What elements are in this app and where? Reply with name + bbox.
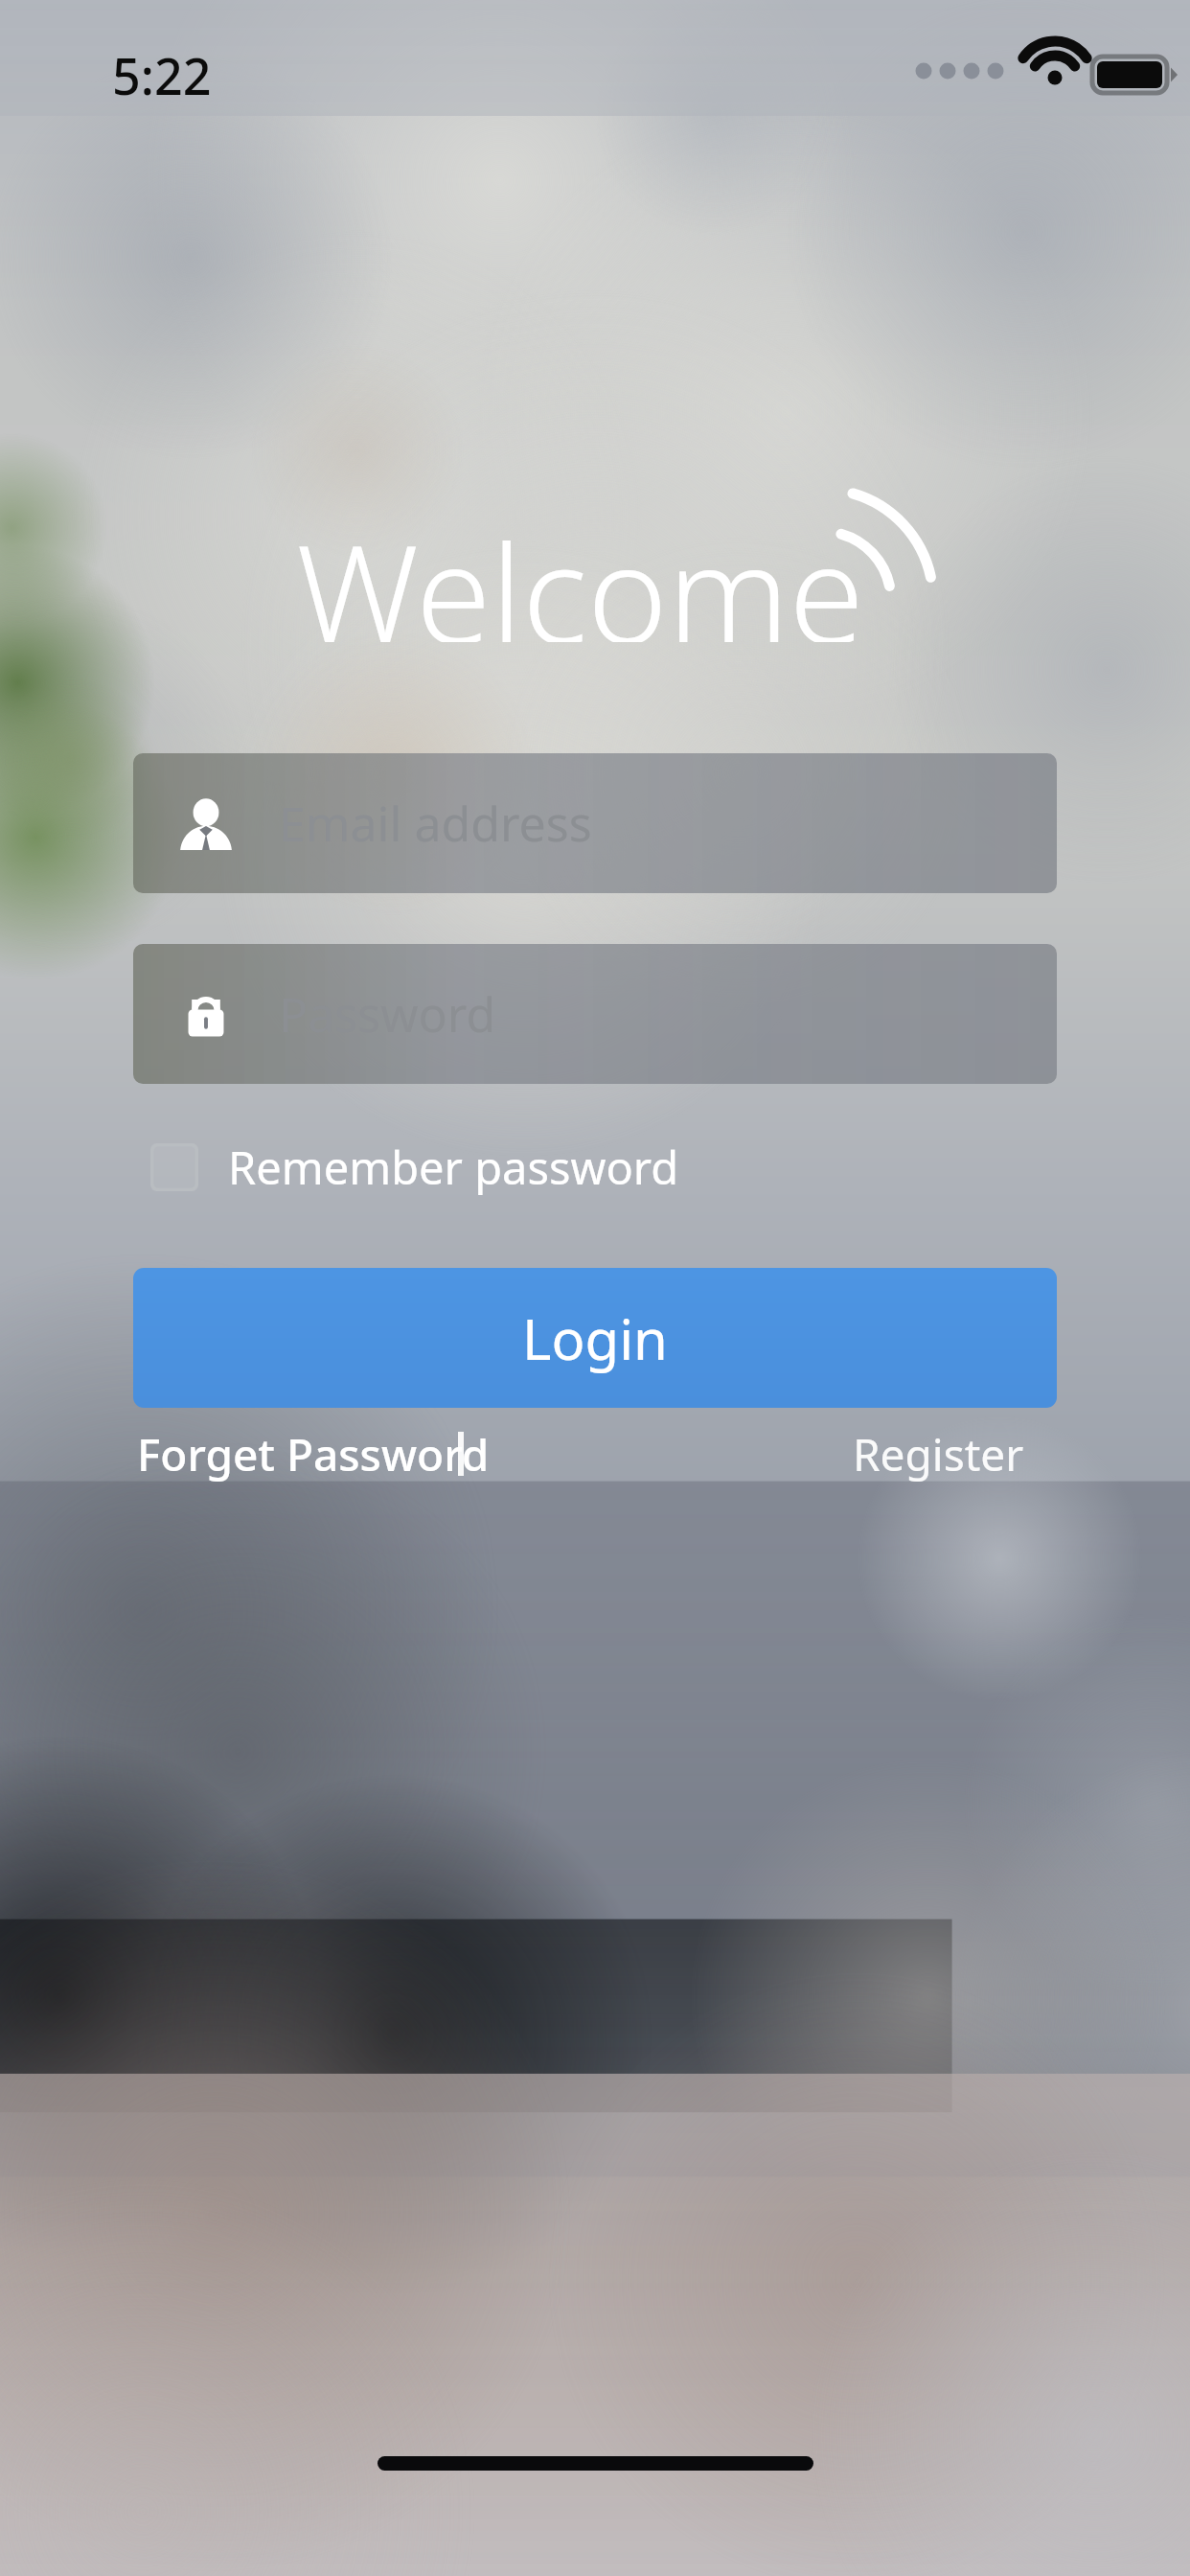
- staticText: Password: [279, 981, 496, 1046]
- button[interactable]: Password: [133, 944, 1057, 1084]
- staticText: Remember password: [228, 1137, 679, 1198]
- button[interactable]: Email address: [133, 753, 1057, 893]
- staticText: Register: [853, 1424, 1024, 1484]
- staticText: 5:22: [112, 41, 212, 109]
- staticText: Email address: [279, 791, 592, 856]
- button[interactable]: Register: [849, 1414, 1028, 1494]
- button[interactable]: Login: [133, 1268, 1057, 1408]
- staticText: Forget Password: [137, 1424, 490, 1484]
- button[interactable]: Remember password: [149, 1133, 681, 1202]
- button[interactable]: Forget Password: [133, 1414, 493, 1494]
- staticText: Welcome: [296, 498, 864, 642]
- staticText: Login: [522, 1300, 668, 1376]
